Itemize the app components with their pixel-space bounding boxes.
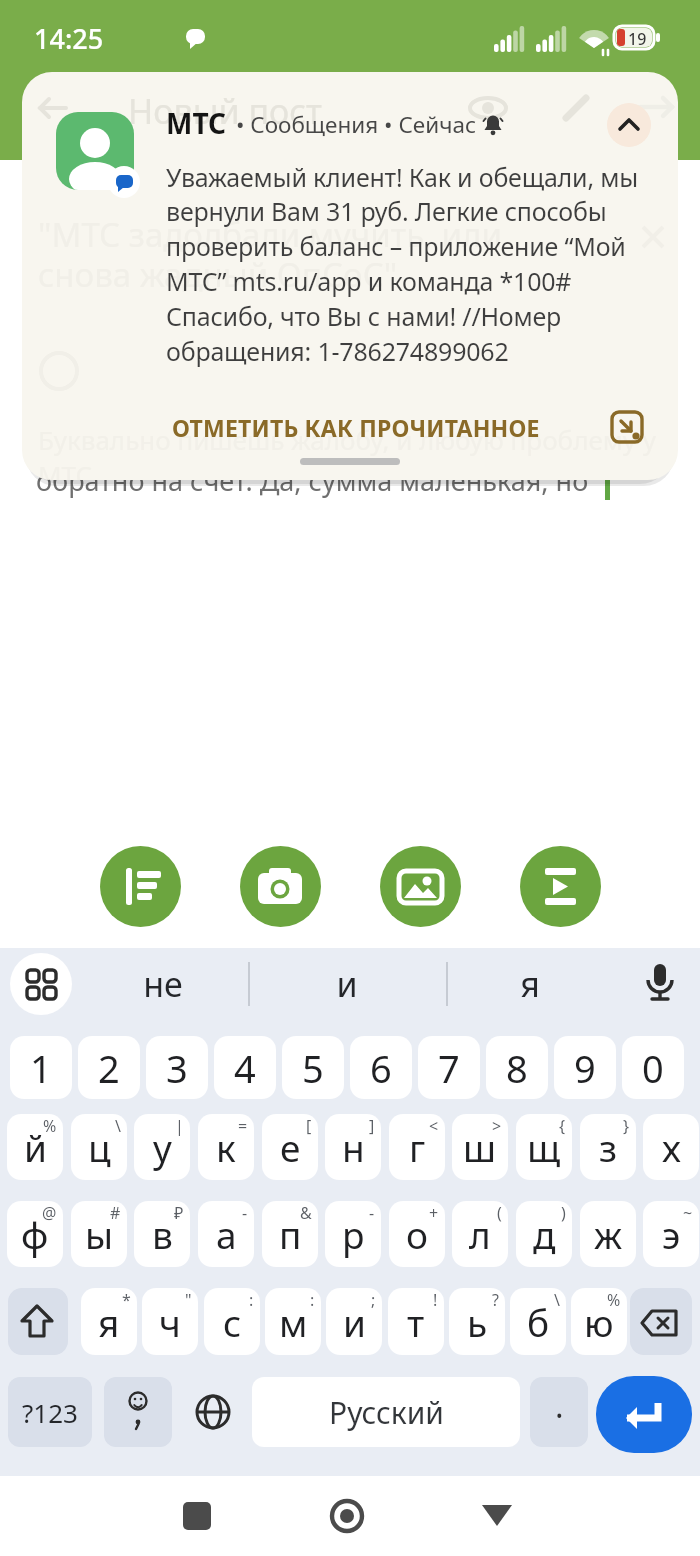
- button[interactable]: ?123: [8, 1377, 92, 1447]
- staticText: ц: [88, 1122, 111, 1172]
- button[interactable]: [380, 846, 461, 927]
- button[interactable]: ж: [580, 1201, 636, 1267]
- staticText: %: [43, 1115, 57, 1137]
- staticText: н: [342, 1122, 365, 1172]
- button[interactable]: [104, 1377, 172, 1447]
- button[interactable]: т: [388, 1288, 444, 1355]
- button[interactable]: ю: [571, 1288, 627, 1355]
- button[interactable]: [610, 410, 646, 446]
- button[interactable]: [480, 1500, 514, 1532]
- button[interactable]: ОТМЕТИТЬ КАК ПРОЧИТАННОЕ: [172, 412, 540, 443]
- staticText: =: [238, 1115, 248, 1137]
- button[interactable]: Русский: [252, 1377, 520, 1447]
- staticText: ш: [463, 1122, 497, 1172]
- staticText: 0: [642, 1042, 664, 1094]
- button[interactable]: з: [580, 1114, 636, 1180]
- button[interactable]: [100, 846, 181, 927]
- button[interactable]: я: [81, 1288, 137, 1355]
- staticText: |: [175, 1115, 184, 1137]
- staticText: ь: [467, 1297, 488, 1347]
- button[interactable]: [520, 846, 601, 927]
- staticText: <: [429, 1115, 439, 1137]
- staticText: 14:25: [34, 20, 104, 57]
- button[interactable]: [10, 953, 72, 1015]
- button[interactable]: [607, 103, 651, 147]
- button[interactable]: о: [389, 1201, 445, 1267]
- staticText: х: [662, 1122, 681, 1172]
- button[interactable]: а: [198, 1201, 254, 1267]
- button[interactable]: в: [134, 1201, 190, 1267]
- staticText: ?: [492, 1289, 499, 1311]
- staticText: Русский: [329, 1392, 444, 1433]
- button[interactable]: л: [452, 1201, 508, 1267]
- button[interactable]: ы: [71, 1201, 127, 1267]
- staticText: ы: [85, 1209, 114, 1259]
- button[interactable]: [329, 1498, 365, 1534]
- button[interactable]: р: [325, 1201, 381, 1267]
- staticText: я: [98, 1297, 120, 1347]
- button[interactable]: и: [284, 958, 410, 1010]
- button[interactable]: не: [100, 958, 226, 1010]
- button[interactable]: ф: [7, 1201, 63, 1267]
- button[interactable]: .: [530, 1377, 588, 1447]
- staticText: а: [216, 1209, 237, 1259]
- staticText: ;: [371, 1289, 376, 1311]
- button[interactable]: [638, 960, 682, 1004]
- button[interactable]: 2: [78, 1036, 140, 1099]
- staticText: в: [152, 1209, 173, 1259]
- button[interactable]: х: [643, 1114, 699, 1180]
- button[interactable]: н: [325, 1114, 381, 1180]
- button[interactable]: 7: [418, 1036, 480, 1099]
- staticText: я: [520, 961, 540, 1007]
- staticText: к: [216, 1122, 236, 1172]
- button[interactable]: 9: [554, 1036, 616, 1099]
- button[interactable]: ш: [452, 1114, 508, 1180]
- button[interactable]: [596, 1376, 692, 1453]
- button[interactable]: у: [134, 1114, 190, 1180]
- staticText: -: [369, 1202, 375, 1224]
- button[interactable]: 1: [10, 1036, 72, 1099]
- button[interactable]: э: [643, 1201, 699, 1267]
- button[interactable]: [240, 846, 321, 927]
- button[interactable]: ч: [142, 1288, 198, 1355]
- staticText: {: [559, 1115, 566, 1137]
- staticText: ж: [594, 1209, 623, 1259]
- staticText: и: [336, 961, 358, 1007]
- button[interactable]: с: [204, 1288, 260, 1355]
- staticText: \: [115, 1115, 121, 1137]
- staticText: й: [24, 1122, 47, 1172]
- button[interactable]: [180, 1377, 246, 1447]
- staticText: р: [342, 1209, 365, 1259]
- button[interactable]: я: [467, 958, 593, 1010]
- button[interactable]: [183, 1502, 211, 1530]
- staticText: 6: [370, 1042, 392, 1094]
- button[interactable]: и: [326, 1288, 382, 1355]
- button[interactable]: Новый пост: [22, 72, 678, 480]
- button[interactable]: 6: [350, 1036, 412, 1099]
- button[interactable]: [630, 1288, 692, 1355]
- button[interactable]: 0: [622, 1036, 684, 1099]
- staticText: г: [409, 1122, 426, 1172]
- button[interactable]: м: [265, 1288, 321, 1355]
- button[interactable]: 4: [214, 1036, 276, 1099]
- button[interactable]: 3: [146, 1036, 208, 1099]
- button[interactable]: ь: [449, 1288, 505, 1355]
- button[interactable]: г: [389, 1114, 445, 1180]
- staticText: ю: [584, 1297, 614, 1347]
- button[interactable]: ц: [71, 1114, 127, 1180]
- button[interactable]: щ: [516, 1114, 572, 1180]
- button[interactable]: б: [510, 1288, 566, 1355]
- button[interactable]: к: [198, 1114, 254, 1180]
- button[interactable]: е: [262, 1114, 318, 1180]
- button[interactable]: д: [516, 1201, 572, 1267]
- button[interactable]: [8, 1288, 68, 1355]
- staticText: 2: [98, 1042, 120, 1094]
- staticText: з: [599, 1122, 618, 1172]
- staticText: &: [300, 1202, 312, 1224]
- button[interactable]: й: [7, 1114, 63, 1180]
- button[interactable]: п: [262, 1201, 318, 1267]
- button[interactable]: 8: [486, 1036, 548, 1099]
- staticText: Буквально пишешь жалобу, и любую проблем…: [38, 422, 678, 480]
- button[interactable]: 5: [282, 1036, 344, 1099]
- staticText: >: [492, 1115, 502, 1137]
